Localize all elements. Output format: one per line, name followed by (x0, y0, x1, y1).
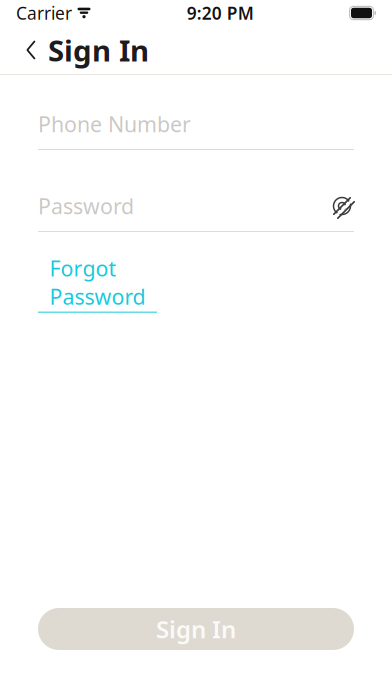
button[interactable]: Back (14, 28, 48, 72)
button[interactable]: Password (38, 193, 354, 232)
button[interactable]: Forgot Password (38, 254, 157, 313)
staticText: Password (38, 192, 134, 220)
staticText: 9:20 PM (187, 1, 254, 24)
staticText: Phone Number (38, 110, 191, 138)
staticText: Carrier (16, 1, 72, 24)
staticText: Sign In (48, 30, 149, 69)
button[interactable]: Phone Number (38, 111, 354, 150)
staticText: Forgot Password (49, 254, 145, 311)
staticText: Sign In (156, 613, 236, 645)
button[interactable]: Sign In (38, 608, 354, 650)
